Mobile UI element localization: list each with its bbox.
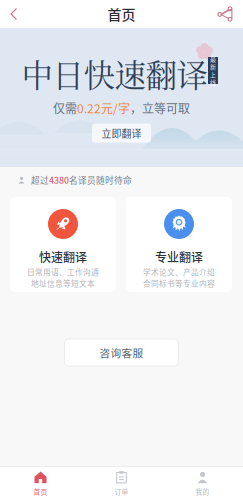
staticText: 中日快速翻译 [21,51,207,96]
staticText: 我的 [195,487,209,496]
button[interactable]: 快速翻译 [10,197,116,292]
staticText: 合同标书等专业内容 [143,278,215,289]
staticText: 4380 [49,174,69,186]
button[interactable]: 订单 [81,469,162,497]
staticText: 新 [210,62,216,71]
button[interactable]: 首页 [0,469,81,497]
staticText: 日常用语、工作沟通 [27,266,99,278]
staticText: 地址信息等短文本 [31,278,95,289]
staticText: 名译员随时待命 [69,174,132,186]
staticText: 最 [210,55,216,63]
staticText: 咨询客服 [99,345,143,360]
staticText: 首页 [107,4,135,24]
button[interactable]: 专业翻译 [126,197,232,292]
staticText: 立即翻译 [101,126,141,140]
button[interactable]: 咨询客服 [64,339,178,366]
staticText: 超过 [31,174,49,186]
staticText: 订单 [114,487,128,496]
button[interactable]: Share [207,0,243,28]
staticText: 0.22元/字 [77,99,130,117]
staticText: 快速翻译 [39,248,87,265]
staticText: 专业翻译 [155,248,203,265]
staticText: 首页 [33,487,47,496]
staticText: 线 [210,78,216,86]
staticText: 上 [210,70,216,79]
button[interactable]: 立即翻译 [92,124,151,143]
staticText: ，立等可取 [130,99,190,117]
button[interactable]: 我的 [162,469,243,497]
staticText: 学术论文、产品介绍 [143,266,215,278]
button[interactable]: Back [0,0,28,28]
staticText: 仅需 [53,99,77,117]
